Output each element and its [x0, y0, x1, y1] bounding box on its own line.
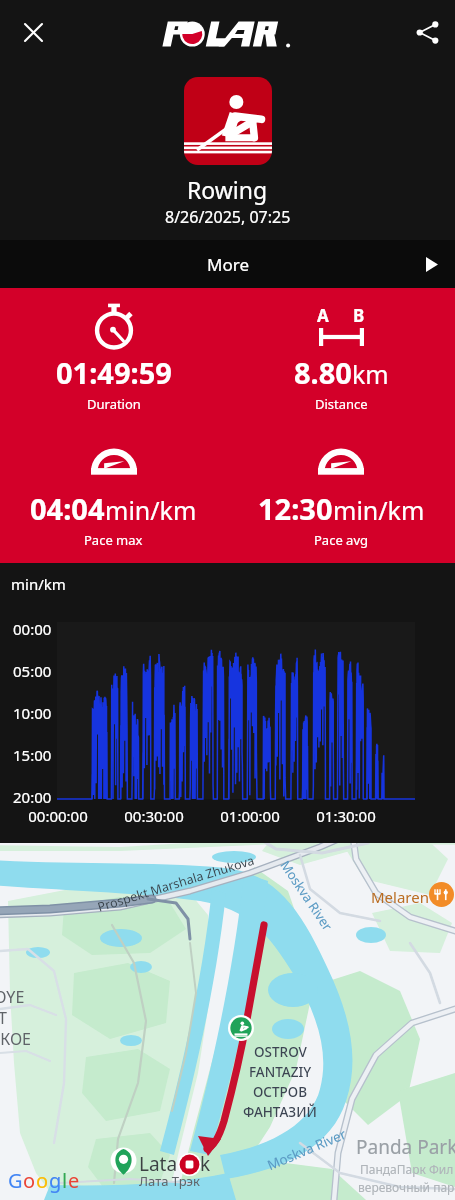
staticText: g	[49, 1167, 62, 1194]
staticText: min/km	[333, 493, 425, 527]
staticText: e	[68, 1167, 80, 1194]
staticText: A	[317, 304, 329, 327]
staticText: 04:04	[30, 489, 105, 528]
staticText: Pace max	[84, 531, 143, 549]
staticText: 01:00:00	[218, 806, 282, 826]
staticText: Lata	[139, 1151, 178, 1177]
staticText: 8/26/2025, 07:25	[165, 206, 291, 228]
staticText: 20:00	[13, 787, 52, 807]
staticText: 01:30:00	[314, 806, 378, 826]
staticText: Prospekt Marshala Zhukova	[95, 852, 256, 916]
staticText: Moskva River	[264, 1125, 349, 1174]
staticText: Distance	[315, 395, 368, 413]
staticText: ОСТРОВ	[253, 1083, 307, 1101]
staticText: Лата Трэк	[139, 1172, 200, 1190]
staticText: 10:00	[13, 703, 52, 723]
staticText: ПандаПарк Фил	[360, 1161, 454, 1177]
staticText: 8.80	[294, 353, 352, 392]
staticText: Duration	[87, 395, 141, 413]
staticText: o	[23, 1167, 36, 1194]
staticText: More	[207, 253, 249, 276]
staticText: 00:00	[13, 619, 52, 639]
staticText: G	[8, 1167, 23, 1194]
staticText: k	[200, 1151, 211, 1177]
staticText: o	[36, 1167, 49, 1194]
staticText: 05:00	[13, 661, 52, 681]
button[interactable]: A	[227, 301, 455, 413]
button[interactable]: 04:04	[0, 437, 227, 549]
staticText: ФАНТАЗИЙ	[243, 1103, 317, 1121]
staticText: min/km	[11, 574, 66, 594]
staticText: 00:00:00	[26, 806, 90, 826]
staticText: 12:30	[258, 489, 333, 528]
button[interactable]: 12:30	[227, 437, 455, 549]
staticText: веревочный пар	[358, 1179, 455, 1195]
staticText: km	[352, 357, 389, 391]
staticText: СКОЕ	[0, 1028, 31, 1050]
button[interactable]: 01:49:59	[0, 301, 227, 413]
staticText: OSTROV	[254, 1043, 307, 1061]
button[interactable]: Close	[9, 8, 57, 56]
staticText: Panda Park Fi	[356, 1134, 455, 1160]
staticText: Rowing	[187, 174, 268, 205]
staticText: FANTAZIY	[249, 1063, 312, 1081]
staticText: 01:49:59	[56, 353, 172, 392]
staticText: T	[0, 1007, 7, 1029]
button[interactable]: More	[0, 240, 455, 288]
staticText: Moskva River	[276, 857, 337, 934]
staticText: 15:00	[13, 745, 52, 765]
staticText: min/km	[105, 493, 197, 527]
button[interactable]: Route map	[0, 843, 455, 1200]
button[interactable]: Share	[403, 8, 451, 56]
staticText: Pace avg	[314, 531, 369, 549]
staticText: OYE	[0, 986, 25, 1008]
staticText: Melaren	[371, 887, 429, 907]
staticText: 00:30:00	[122, 806, 186, 826]
staticText: l	[62, 1167, 68, 1194]
staticText: B	[353, 304, 365, 327]
